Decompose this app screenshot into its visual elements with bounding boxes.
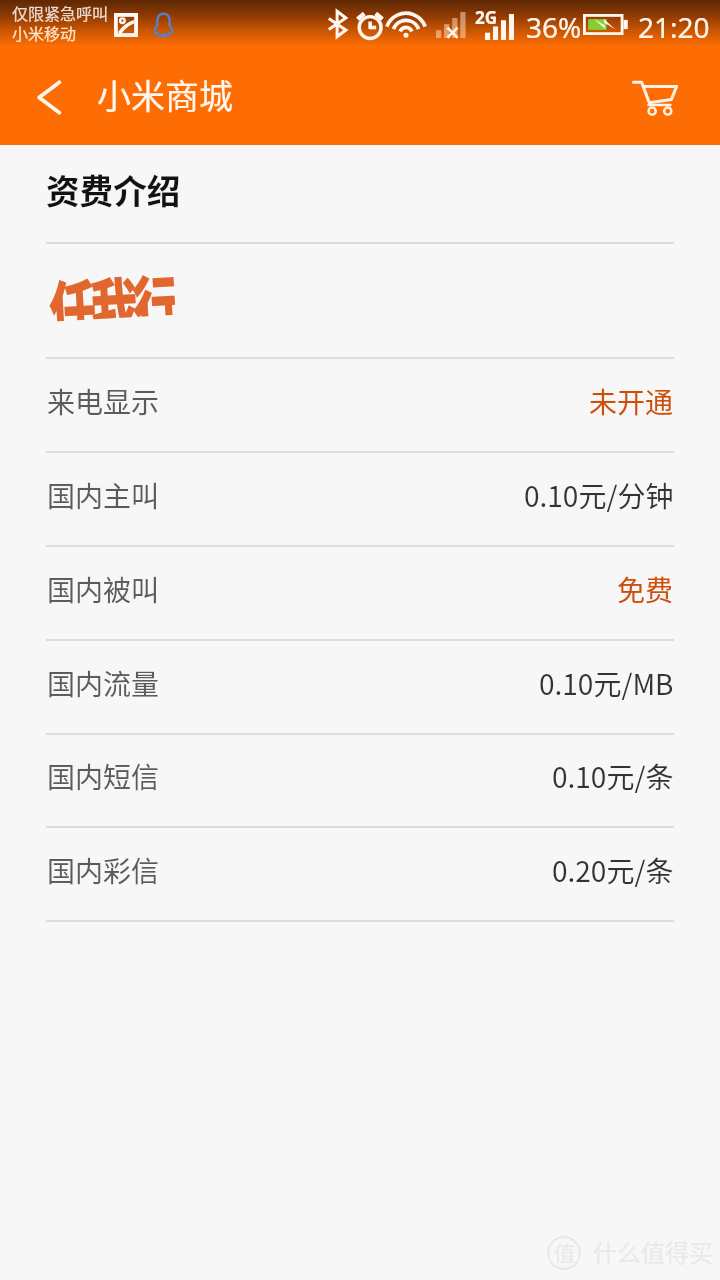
staticText: 免费 xyxy=(617,569,674,610)
staticText: 0.20元/条 xyxy=(552,850,674,891)
staticText: 21:20 xyxy=(638,8,710,46)
button[interactable]: 国内被叫 xyxy=(0,547,720,639)
button[interactable]: 国内彩信 xyxy=(0,828,720,920)
staticText: 0.10元/分钟 xyxy=(524,475,674,516)
button[interactable]: 国内短信 xyxy=(0,735,720,826)
button[interactable]: Shopping cart xyxy=(608,46,720,145)
staticText: 国内流量 xyxy=(47,663,160,704)
staticText: 国内被叫 xyxy=(47,569,160,610)
staticText: 资费介绍 xyxy=(46,165,181,214)
staticText: 未开通 xyxy=(589,381,674,422)
staticText: 什么值得买 xyxy=(593,1234,713,1269)
button[interactable]: 国内主叫 xyxy=(0,453,720,545)
staticText: 2G xyxy=(475,6,498,29)
staticText: 小米移动 xyxy=(12,21,77,44)
staticText: 小米商城 xyxy=(97,70,233,119)
staticText: 值 xyxy=(554,1237,575,1267)
staticText: 仅限紧急呼叫 xyxy=(12,1,109,24)
staticText: 0.10元/MB xyxy=(539,663,674,704)
staticText: 任我行 xyxy=(46,252,176,322)
staticText: 来电显示 xyxy=(47,381,160,422)
button[interactable]: 来电显示 xyxy=(0,359,720,451)
staticText: 36% xyxy=(526,8,582,46)
staticText: 0.10元/条 xyxy=(552,756,674,797)
staticText: 国内短信 xyxy=(47,756,160,797)
button[interactable]: Back xyxy=(0,46,98,145)
staticText: 国内彩信 xyxy=(47,850,160,891)
staticText: 国内主叫 xyxy=(47,475,160,516)
button[interactable]: 国内流量 xyxy=(0,641,720,733)
